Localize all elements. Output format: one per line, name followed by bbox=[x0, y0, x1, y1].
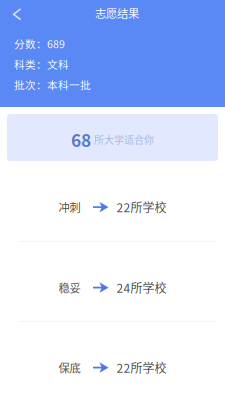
staticText: 22所学校 bbox=[116, 198, 166, 216]
staticText: 批次：本科一批 bbox=[14, 77, 91, 92]
staticText: 24所学校 bbox=[116, 279, 166, 296]
staticText: 保底 bbox=[58, 359, 80, 376]
button[interactable]: 保底 bbox=[0, 322, 225, 400]
staticText: 冲刺 bbox=[58, 199, 80, 215]
staticText: 22所学校 bbox=[116, 359, 166, 376]
button[interactable]: 稳妥 bbox=[0, 242, 225, 321]
button[interactable]: Back bbox=[0, 0, 31, 26]
button[interactable]: 冲刺 bbox=[0, 169, 225, 241]
staticText: 68 bbox=[71, 127, 91, 152]
staticText: 所大学适合你 bbox=[94, 132, 154, 147]
staticText: 分数：689 bbox=[14, 36, 65, 51]
staticText: 志愿结果 bbox=[95, 5, 139, 21]
staticText: 科类：文科 bbox=[14, 56, 69, 72]
staticText: 稳妥 bbox=[58, 279, 80, 296]
